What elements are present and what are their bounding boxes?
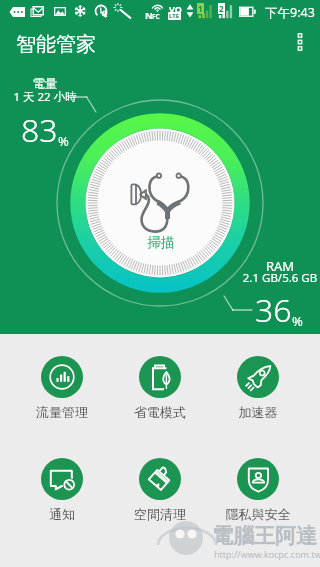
staticText: 83 [21, 108, 58, 152]
staticText: N [145, 9, 153, 22]
staticText: 掃描 [81, 234, 241, 251]
staticText: http://www.kocpc.com.tw [214, 548, 320, 560]
staticText: VO [169, 3, 182, 15]
staticText: 空間清理 [114, 506, 206, 522]
staticText: 1 天 22 小時 [0, 89, 125, 105]
button[interactable]: 智能管家 [0, 20, 112, 68]
button[interactable]: Power saver [114, 356, 206, 420]
staticText: 電腦王阿達 [212, 523, 317, 549]
staticText: % [292, 312, 303, 330]
button[interactable]: Storage cleanup [114, 458, 206, 522]
button[interactable]: Booster [212, 356, 304, 420]
staticText: 36 [255, 288, 292, 332]
staticText: 隱私與安全 [212, 506, 304, 522]
staticText: 2 [219, 3, 224, 14]
button[interactable]: Privacy and security [212, 458, 304, 522]
staticText: FC [152, 12, 160, 21]
button[interactable]: Data manager [16, 356, 108, 420]
button[interactable]: More options [284, 20, 320, 68]
staticText: LTE [169, 12, 180, 20]
button[interactable]: Notifications [16, 458, 108, 522]
button[interactable]: Scan [86, 129, 234, 277]
staticText: 智能管家 [16, 32, 96, 57]
staticText: 加速器 [212, 404, 304, 420]
staticText: 流量管理 [16, 404, 108, 420]
staticText: 下午9:43 [265, 4, 315, 21]
staticText: RAM [200, 257, 320, 275]
staticText: 省電模式 [114, 404, 206, 420]
staticText: % [58, 132, 69, 150]
staticText: 電量 [0, 76, 125, 92]
staticText: 1 [198, 3, 203, 14]
staticText: 2.1 GB/5.6 GB [200, 270, 320, 286]
staticText: 通知 [16, 506, 108, 522]
